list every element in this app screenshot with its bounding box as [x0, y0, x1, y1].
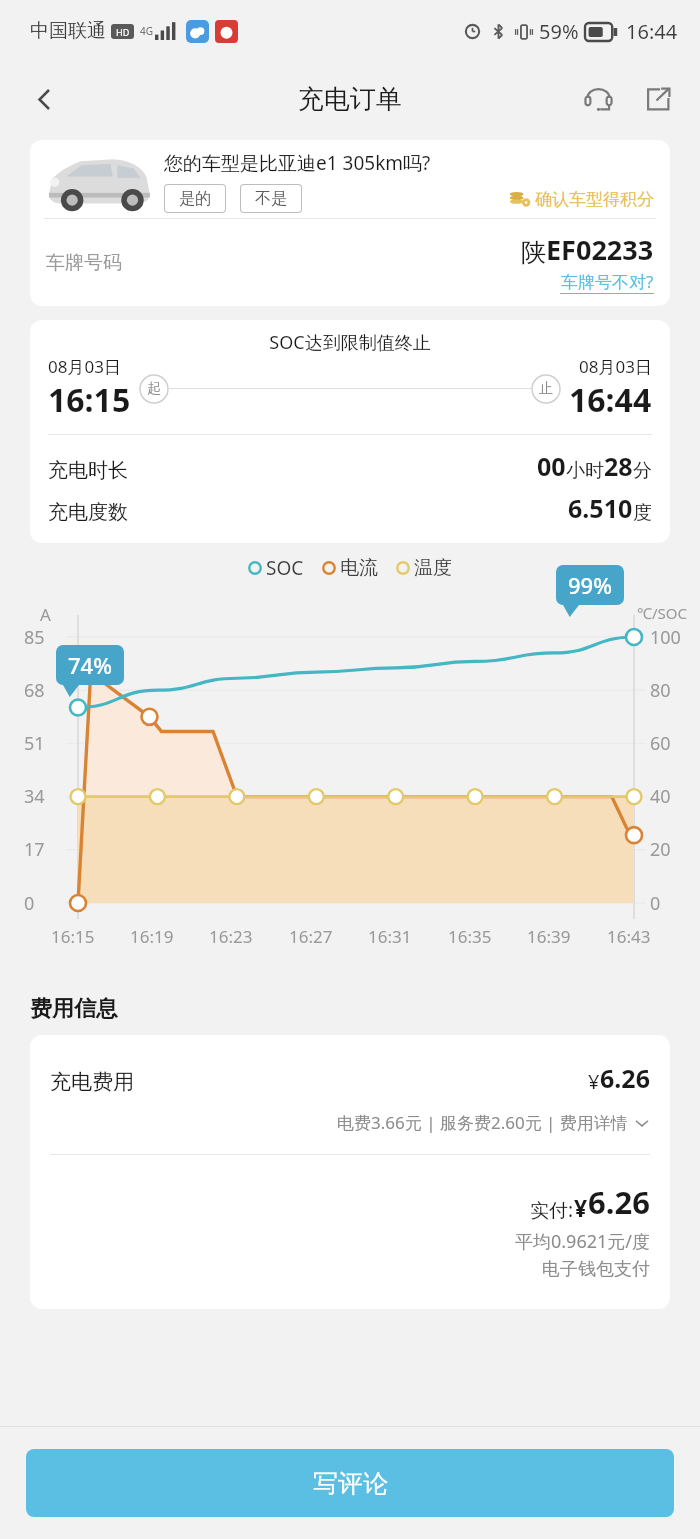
staticText: 28	[604, 449, 633, 483]
button[interactable]: 是的	[164, 184, 226, 213]
staticText: 止	[539, 380, 553, 398]
staticText: HD	[116, 26, 130, 38]
staticText: 16:15	[51, 925, 95, 948]
staticText: 99%	[568, 570, 612, 600]
staticText: 16:44	[626, 18, 678, 45]
staticText: 车牌号不对?	[561, 270, 654, 293]
staticText: 实付:	[530, 1197, 574, 1223]
staticText: 陕	[521, 237, 546, 268]
staticText: 16:43	[607, 925, 651, 948]
staticText: 不是	[255, 189, 287, 209]
staticText: 16:27	[289, 925, 333, 948]
staticText: 0	[24, 891, 35, 916]
staticText: 6.26	[600, 1061, 650, 1095]
button[interactable]: 写评论	[26, 1449, 674, 1517]
staticText: 起	[147, 380, 161, 398]
staticText: 34	[24, 784, 45, 809]
staticText: 00	[537, 449, 566, 483]
staticText: 60	[650, 731, 671, 756]
staticText: 68	[24, 678, 45, 703]
staticText: 85	[24, 625, 45, 650]
staticText: ¥	[574, 1192, 588, 1223]
staticText: 写评论	[313, 1468, 388, 1499]
staticText: 确认车型得积分	[535, 189, 654, 210]
staticText: A	[40, 603, 51, 626]
staticText: 充电时长	[48, 458, 128, 483]
staticText: 充电订单	[298, 83, 402, 116]
button[interactable]: 车牌号不对?	[560, 270, 654, 294]
staticText: 16:35	[448, 925, 492, 948]
staticText: 是的	[179, 189, 211, 209]
staticText: 20	[650, 837, 671, 862]
staticText: 温度	[414, 556, 452, 580]
staticText: 中国联通	[30, 19, 106, 43]
staticText: SOC达到限制值终止	[48, 330, 652, 355]
staticText: 费用信息	[30, 995, 118, 1023]
button[interactable]: 确认车型得积分	[509, 188, 654, 210]
staticText: ℃/SOC	[637, 603, 687, 623]
staticText: 16:15	[48, 378, 131, 422]
staticText: 电费3.66元 | 服务费2.60元 | 费用详情	[337, 1111, 628, 1134]
staticText: 51	[24, 731, 45, 756]
staticText: 6.26	[588, 1181, 650, 1223]
staticText: 小时	[566, 459, 604, 483]
staticText: 度	[633, 501, 652, 525]
staticText: 16:23	[209, 925, 253, 948]
staticText: 0	[650, 891, 661, 916]
staticText: 08月03日	[48, 355, 121, 378]
staticText: 您的车型是比亚迪e1 305km吗?	[164, 150, 431, 176]
staticText: 4G	[140, 24, 153, 38]
staticText: 6.510	[568, 491, 633, 525]
staticText: 分	[633, 459, 652, 483]
staticText: ¥	[588, 1068, 600, 1095]
staticText: 17	[24, 837, 45, 862]
staticText: 车牌号码	[46, 251, 122, 275]
button[interactable]: 电费3.66元 | 服务费2.60元 | 费用详情	[50, 1111, 650, 1134]
staticText: 充电度数	[48, 500, 128, 525]
staticText: 74%	[68, 650, 112, 680]
staticText: 电流	[340, 556, 378, 580]
staticText: SOC	[266, 555, 304, 581]
staticText: 平均0.9621元/度	[50, 1229, 650, 1254]
button[interactable]: Back	[20, 75, 68, 123]
staticText: 电子钱包支付	[50, 1258, 650, 1281]
staticText: 59%	[539, 18, 579, 45]
staticText: 充电费用	[50, 1069, 134, 1095]
staticText: 100	[650, 625, 681, 650]
staticText: 40	[650, 784, 671, 809]
staticText: 16:31	[368, 925, 412, 948]
staticText: 80	[650, 678, 671, 703]
staticText: 16:19	[130, 925, 174, 948]
staticText: EF02233	[546, 231, 654, 268]
staticText: 08月03日	[579, 355, 652, 378]
staticText: 16:39	[527, 925, 571, 948]
staticText: 16:44	[569, 378, 652, 422]
button[interactable]: Share	[634, 75, 682, 123]
button[interactable]: 不是	[240, 184, 302, 213]
button[interactable]: Customer service	[574, 75, 622, 123]
